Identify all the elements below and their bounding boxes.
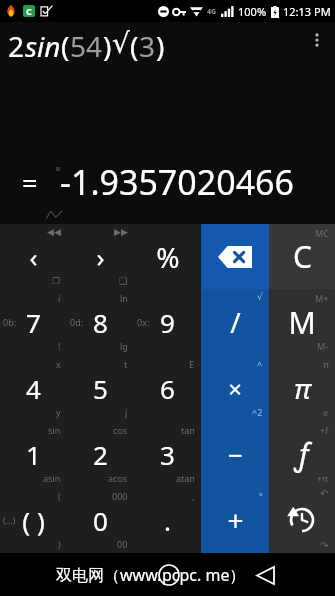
staticText: pcpc. me） (162, 564, 246, 586)
button[interactable]: E (134, 355, 201, 421)
staticText: +π (317, 472, 329, 484)
button[interactable]: ln (67, 289, 134, 355)
staticText: ) (103, 27, 112, 65)
staticText: / (230, 303, 241, 341)
staticText: = (22, 164, 38, 201)
button[interactable]: i (0, 289, 67, 355)
button[interactable]: sin (0, 421, 67, 487)
staticText: e (323, 406, 329, 418)
staticText: 5 (93, 371, 108, 406)
staticText: ( (130, 27, 139, 65)
staticText: ln (120, 292, 128, 304)
staticText: 0d: (70, 316, 84, 328)
button[interactable]: , (134, 487, 201, 553)
staticText: MC (315, 227, 329, 239)
button[interactable]: % (134, 224, 201, 289)
staticText: , (192, 490, 195, 502)
staticText: +f (320, 424, 329, 436)
staticText: E (189, 358, 195, 370)
staticText: › (96, 239, 105, 274)
staticText: ^ (257, 358, 263, 370)
button[interactable]: 0x: (134, 289, 201, 355)
staticText: t (124, 358, 128, 370)
staticText: -1.9357020466 (60, 159, 294, 205)
staticText: 4 (26, 371, 41, 406)
staticText: ❑ (119, 276, 128, 286)
staticText: + (227, 501, 244, 539)
staticText: ▶▶ (114, 227, 128, 237)
staticText: 3 (160, 437, 175, 472)
staticText: 1 (26, 437, 41, 472)
staticText: ( (58, 490, 61, 502)
staticText: ‹ (29, 239, 38, 274)
staticText: 0x: (137, 316, 150, 328)
staticText: C (26, 5, 32, 17)
button[interactable]: tan (134, 421, 201, 487)
button[interactable]: M+ (269, 289, 335, 355)
button[interactable]: More options (303, 26, 331, 54)
button[interactable]: Back (250, 560, 280, 590)
button[interactable]: ° (201, 487, 269, 553)
staticText: 7 (26, 305, 41, 340)
staticText: 3 (139, 27, 156, 65)
button[interactable]: √ (201, 289, 269, 355)
staticText: − (228, 437, 243, 472)
button[interactable]: History (269, 487, 335, 553)
button[interactable]: ◀◀ (0, 224, 67, 289)
staticText: 双电网（www. (56, 564, 162, 586)
button[interactable]: Backspace (201, 224, 269, 289)
staticText: (…) (3, 514, 16, 526)
staticText: x (56, 358, 61, 370)
staticText: 6 (160, 371, 175, 406)
staticText: 54 (70, 27, 103, 65)
staticText: 9 (160, 305, 175, 340)
staticText: sin (25, 27, 61, 65)
staticText: lg (120, 340, 128, 352)
staticText: √ (257, 292, 263, 302)
staticText: ) (58, 538, 61, 550)
staticText: i (58, 292, 61, 304)
staticText: C (293, 236, 312, 277)
staticText: π (323, 358, 329, 370)
button[interactable]: t (67, 355, 134, 421)
button[interactable]: ^ (201, 355, 269, 421)
staticText: cos (113, 424, 128, 436)
staticText: √ (112, 27, 130, 60)
staticText: tan (181, 424, 195, 436)
staticText: ^2 (252, 406, 263, 418)
staticText: atan (176, 472, 195, 484)
button[interactable]: +f (269, 421, 335, 487)
staticText: M- (317, 340, 329, 352)
staticText: M+ (315, 292, 329, 304)
staticText: π (294, 369, 311, 407)
staticText: ↶ (320, 488, 329, 500)
staticText: 2 (93, 437, 108, 472)
button[interactable]: cos (67, 421, 134, 487)
staticText: asin (43, 472, 61, 484)
staticText: 100% (238, 4, 267, 19)
staticText: 00 (117, 538, 128, 550)
staticText: . (164, 503, 171, 538)
staticText: 2 (8, 27, 25, 65)
button[interactable]: MC (269, 224, 335, 289)
button[interactable]: 000 (67, 487, 134, 553)
staticText: j (125, 406, 128, 418)
staticText: y (56, 406, 61, 418)
staticText: 8 (93, 305, 108, 340)
staticText: 000 (112, 490, 128, 502)
staticText: sin (48, 424, 61, 436)
staticText: acos (108, 472, 128, 484)
staticText: 12:13 PM (283, 4, 331, 19)
staticText: ƒ (296, 434, 309, 475)
button[interactable]: π (269, 355, 335, 421)
staticText: ◀◀ (47, 227, 61, 237)
staticText: 0 (93, 503, 108, 538)
staticText: ❐ (52, 276, 61, 286)
button[interactable]: − (201, 421, 269, 487)
button[interactable]: ▶▶ (67, 224, 134, 289)
button[interactable]: ( (0, 487, 67, 553)
button[interactable]: x (0, 355, 67, 421)
staticText: ! (58, 340, 61, 352)
staticText: 0b: (3, 316, 17, 328)
staticText: ( (61, 27, 70, 65)
